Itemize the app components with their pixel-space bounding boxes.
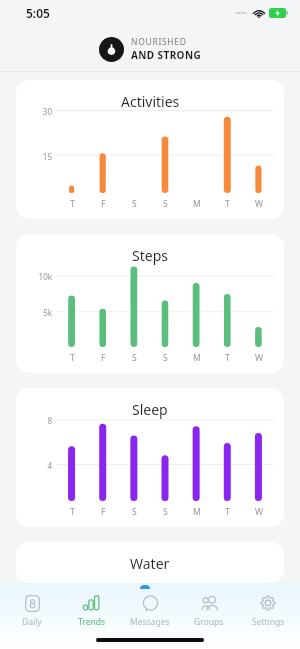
staticText: S bbox=[163, 352, 168, 364]
button[interactable]: Settings bbox=[241, 591, 295, 630]
button[interactable]: Daily bbox=[5, 591, 59, 630]
other: Messages bbox=[142, 595, 159, 612]
staticText: W bbox=[255, 352, 263, 364]
staticText: S bbox=[163, 198, 168, 210]
staticText: F bbox=[101, 198, 106, 210]
staticText: Groups bbox=[194, 616, 224, 628]
button[interactable]: Activities bbox=[16, 80, 284, 219]
other: Settings bbox=[259, 594, 277, 612]
staticText: NOURISHED bbox=[131, 36, 187, 48]
staticText: Messages bbox=[130, 616, 170, 628]
staticText: F bbox=[101, 506, 106, 518]
staticText: T bbox=[70, 352, 75, 364]
button[interactable]: Steps bbox=[16, 234, 284, 373]
staticText: Activities bbox=[121, 92, 180, 111]
staticText: 30 bbox=[30, 106, 52, 117]
staticText: Steps bbox=[132, 246, 168, 265]
staticText: M bbox=[193, 198, 201, 210]
staticText: 8 bbox=[30, 415, 52, 426]
staticText: F bbox=[101, 352, 106, 364]
button[interactable]: Trends bbox=[64, 591, 118, 630]
staticText: T bbox=[225, 352, 230, 364]
staticText: T bbox=[225, 506, 230, 518]
staticText: 10k bbox=[30, 271, 52, 282]
staticText: T bbox=[225, 198, 230, 210]
staticText: AND STRONG bbox=[131, 48, 202, 62]
button[interactable]: Messages bbox=[123, 591, 177, 630]
staticText: S bbox=[163, 506, 168, 518]
staticText: Settings bbox=[252, 616, 285, 628]
staticText: Daily bbox=[22, 616, 42, 628]
staticText: 5k bbox=[30, 307, 52, 318]
staticText: 4 bbox=[30, 460, 52, 471]
staticText: Sleep bbox=[132, 400, 168, 419]
other: Groups bbox=[200, 594, 219, 613]
staticText: S bbox=[132, 198, 137, 210]
other: Daily bbox=[24, 595, 41, 612]
staticText: T bbox=[70, 198, 75, 210]
button[interactable]: Sleep bbox=[16, 388, 284, 527]
staticText: Trends bbox=[78, 616, 105, 628]
staticText: S bbox=[132, 506, 137, 518]
staticText: W bbox=[255, 506, 263, 518]
staticText: M bbox=[193, 506, 201, 518]
staticText: Water bbox=[130, 554, 170, 573]
staticText: 5:05 bbox=[26, 5, 50, 21]
staticText: M bbox=[193, 352, 201, 364]
staticText: S bbox=[132, 352, 137, 364]
staticText: W bbox=[255, 198, 263, 210]
staticText: 15 bbox=[30, 151, 52, 162]
other: Trends bbox=[82, 594, 100, 612]
button[interactable]: Groups bbox=[182, 591, 236, 630]
staticText: T bbox=[70, 506, 75, 518]
button[interactable]: Water bbox=[16, 542, 284, 583]
